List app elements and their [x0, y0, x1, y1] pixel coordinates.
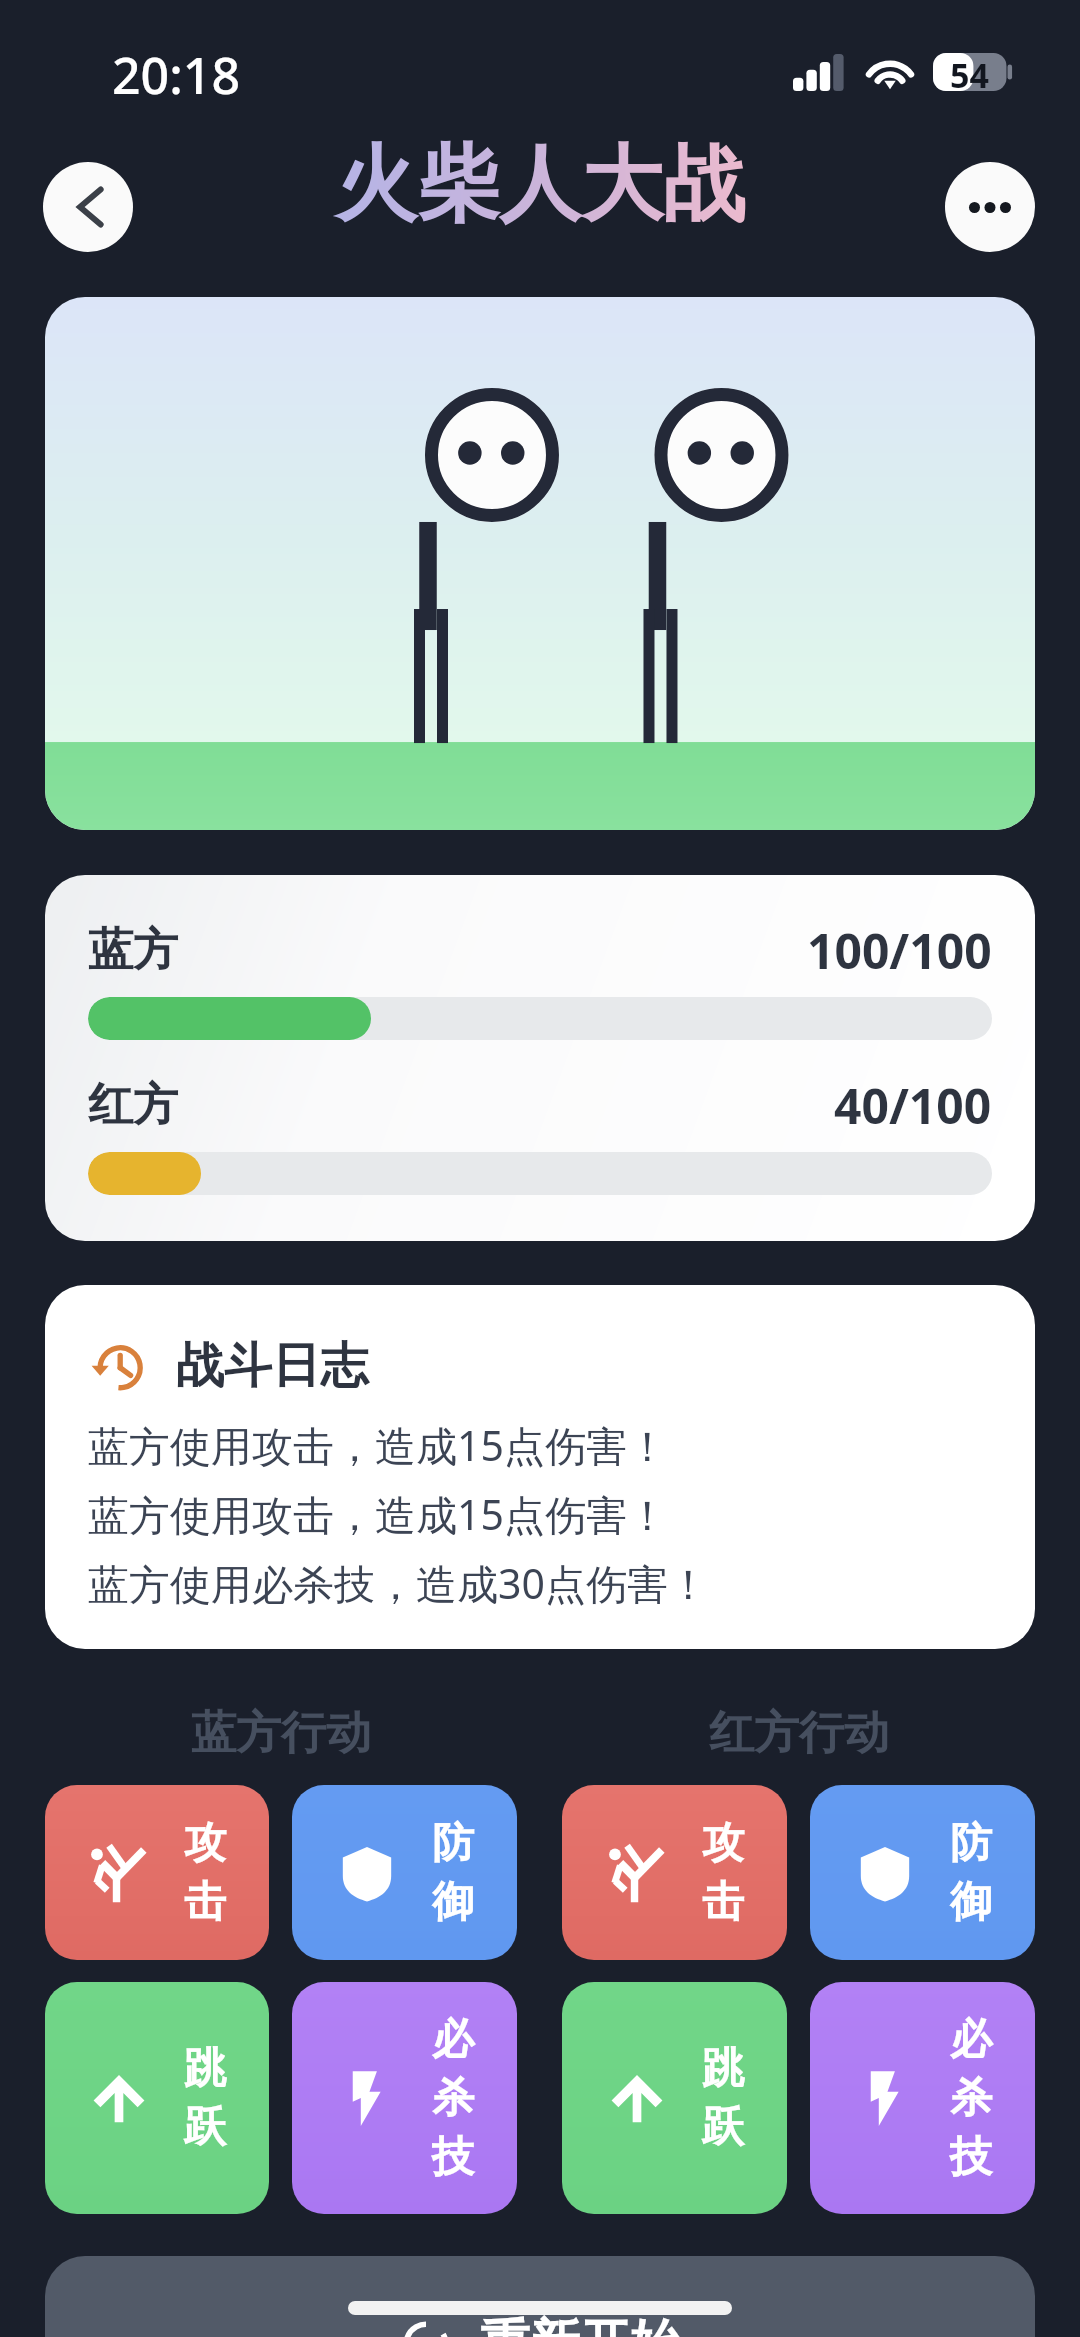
button[interactable]: 跳跃: [45, 1982, 269, 2214]
button[interactable]: More options: [945, 162, 1035, 252]
staticText: 蓝方使用攻击，造成15点伤害！ 蓝方使用攻击，造成15点伤害！ 蓝方使用必杀技，…: [88, 1417, 709, 1611]
staticText: 20:18: [112, 41, 240, 109]
staticText: 红方行动: [709, 1705, 889, 1762]
button[interactable]: 跳跃: [562, 1982, 787, 2214]
button[interactable]: 防御: [810, 1785, 1035, 1960]
staticText: 54: [950, 52, 989, 90]
button[interactable]: 重新开始: [45, 2256, 1035, 2337]
staticText: 蓝方: [88, 922, 178, 979]
button[interactable]: 必杀技: [810, 1982, 1035, 2214]
staticText: 攻击: [184, 1817, 226, 1929]
staticText: 攻击: [702, 1817, 744, 1929]
staticText: 40/100: [834, 1073, 992, 1138]
staticText: 必杀技: [950, 2013, 992, 2184]
button[interactable]: 攻击: [45, 1785, 269, 1960]
staticText: 重新开始: [480, 2312, 680, 2337]
staticText: 红方: [88, 1077, 178, 1134]
button[interactable]: 攻击: [562, 1785, 787, 1960]
staticText: 跳跃: [184, 2042, 226, 2154]
staticText: 防御: [950, 1817, 992, 1929]
staticText: 防御: [432, 1817, 474, 1929]
button[interactable]: Back: [43, 162, 133, 252]
staticText: 火柴人大战: [335, 133, 745, 236]
staticText: 战斗日志: [176, 1336, 368, 1396]
staticText: 跳跃: [702, 2042, 744, 2154]
button[interactable]: 必杀技: [292, 1982, 517, 2214]
staticText: 蓝方行动: [191, 1705, 371, 1762]
button[interactable]: 防御: [292, 1785, 517, 1960]
staticText: 必杀技: [432, 2013, 474, 2184]
staticText: 100/100: [807, 918, 992, 983]
